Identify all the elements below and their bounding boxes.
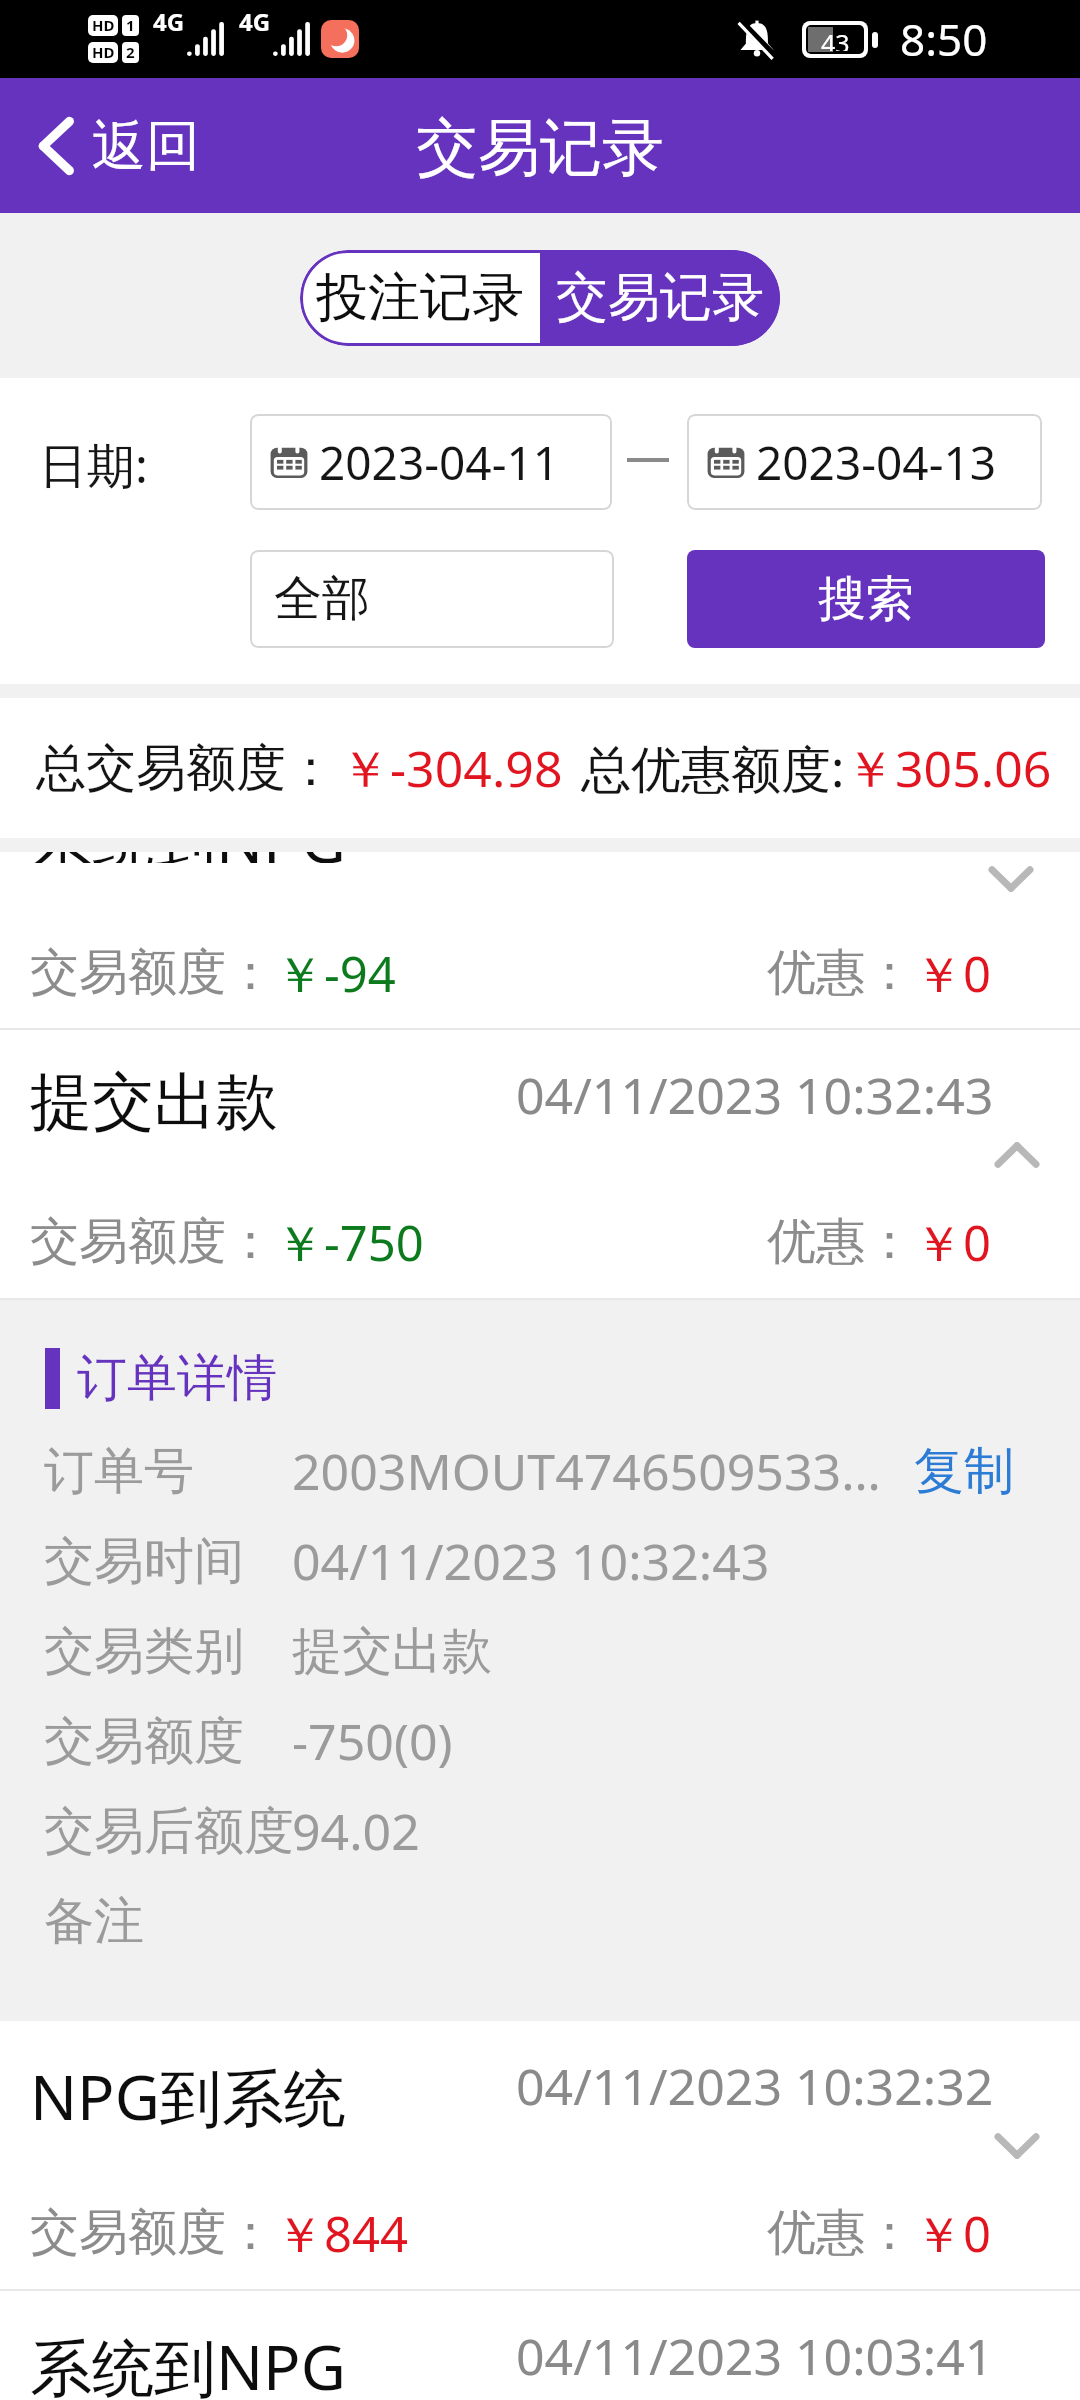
staticText: ￥-304.98 [340,734,563,802]
staticText: 04/11/2023 10:03:41 [516,2322,994,2390]
staticText: 交易记录 [416,109,664,187]
staticText: 提交出款 [30,1063,278,1141]
button[interactable]: 2023-04-11 [250,414,612,510]
staticText: 搜索 [818,569,914,629]
staticText: ￥0 [914,2200,992,2267]
staticText: 交易类别 [44,1620,244,1683]
other: Expand [988,866,1034,892]
staticText: 1 [126,15,135,35]
staticText: 提交出款 [292,1620,492,1683]
staticText: 总优惠额度: [581,734,845,802]
staticText: 2023-04-11 [319,431,560,494]
staticText: 订单详情 [77,1347,277,1410]
staticText: 2003MOUT4746509533… [292,1437,881,1505]
staticText: 04/11/2023 10:32:43 [292,1527,770,1595]
staticText: 交易后额度 [44,1800,294,1863]
staticText: 备注 [44,1890,144,1953]
staticText: 优惠： [767,1211,914,1273]
staticText: NPG到系统 [30,2054,346,2139]
staticText: 日期: [39,432,148,498]
staticText: 交易额度 [44,1710,244,1773]
staticText: ￥0 [914,1209,992,1276]
button[interactable]: 交易记录 [540,250,780,346]
staticText: 全部 [274,569,370,629]
staticText: 系统到NPG [30,852,346,863]
staticText: -750(0) [292,1707,453,1775]
button[interactable]: 提交出款 [0,1030,1080,1300]
button[interactable]: 投注记录 [300,250,540,346]
staticText: ￥305.06 [845,734,1052,802]
staticText: 交易额度： [30,942,275,1004]
staticText: ￥0 [914,940,992,1007]
button[interactable]: 系统到NPG [0,852,1080,1030]
staticText: 交易额度： [30,2202,275,2264]
button[interactable]: 2023-04-13 [687,414,1042,510]
staticText: 总交易额度： [36,737,336,800]
staticText: 投注记录 [316,265,524,331]
staticText: 返回 [92,112,200,180]
staticText: 04/11/2023 10:32:43 [516,1061,994,1129]
staticText: 2023-04-13 [756,431,997,494]
other: Collapse [994,1142,1040,1168]
staticText: 8:50 [900,9,988,69]
button[interactable]: 复制 [906,1434,1022,1509]
staticText: HD [92,15,115,35]
staticText: 交易时间 [44,1530,244,1593]
staticText: 94.02 [292,1797,420,1865]
staticText: 订单号 [44,1440,194,1503]
staticText: 系统到NPG [30,2324,346,2400]
staticText: 2 [126,42,135,62]
button[interactable]: 系统到NPG [0,2291,1080,2400]
staticText: ￥-750 [275,1209,424,1276]
staticText: ￥844 [275,2200,409,2267]
staticText: 优惠： [767,2202,914,2264]
staticText: 交易额度： [30,1211,275,1273]
button[interactable]: 返回 [0,94,226,198]
staticText: ￥-94 [275,940,396,1007]
button[interactable]: 搜索 [687,550,1045,648]
staticText: 4G [239,5,271,38]
staticText: 优惠： [767,942,914,1004]
other: Expand [994,2133,1040,2159]
staticText: 复制 [914,1440,1014,1503]
staticText: 4G [153,5,185,38]
staticText: 交易记录 [556,265,764,331]
staticText: 04/11/2023 10:32:32 [516,2052,994,2120]
button[interactable]: NPG到系统 [0,2021,1080,2291]
button[interactable]: 全部 [250,550,614,648]
staticText: 43 [821,26,850,51]
staticText: HD [92,42,115,62]
